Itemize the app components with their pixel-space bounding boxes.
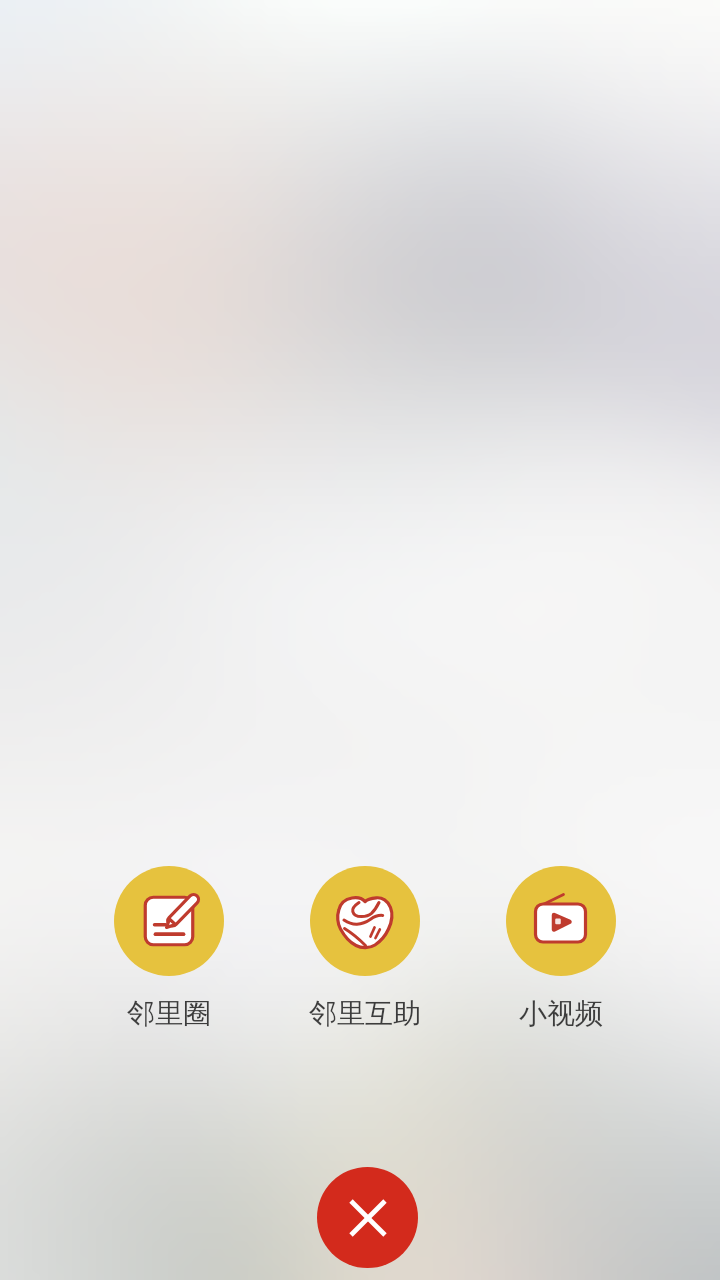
- staticText: 小视频: [519, 996, 603, 1031]
- staticText: 邻里圈: [127, 996, 211, 1031]
- button[interactable]: 邻里圈: [110, 866, 228, 1031]
- button[interactable]: Close: [317, 1167, 418, 1268]
- staticText: 邻里互助: [309, 996, 421, 1031]
- button[interactable]: 邻里互助: [306, 866, 424, 1031]
- button[interactable]: 小视频: [502, 866, 620, 1031]
